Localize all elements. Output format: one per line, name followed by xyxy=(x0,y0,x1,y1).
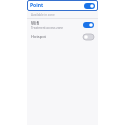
staticText: Treatment access zone xyxy=(31,26,64,30)
staticText: Available in zone xyxy=(31,13,55,17)
other: Toggle hotspot xyxy=(83,34,94,40)
staticText: Point xyxy=(30,2,44,9)
staticText: Wifi xyxy=(31,20,40,26)
button[interactable]: Wifi xyxy=(27,19,98,31)
button[interactable]: Hotspot xyxy=(27,31,98,42)
staticText: Hotspot xyxy=(31,34,83,39)
button[interactable]: Point xyxy=(27,0,98,11)
